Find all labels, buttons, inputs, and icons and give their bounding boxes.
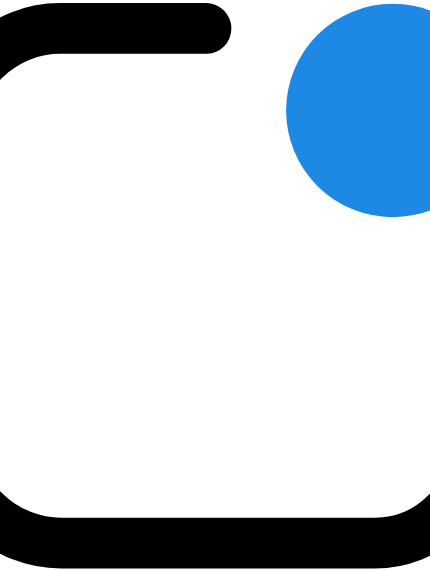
button[interactable]: Menu — [0, 3, 232, 54]
button[interactable]: Create — [286, 4, 430, 217]
button[interactable]: Navigation bar — [0, 517, 430, 570]
